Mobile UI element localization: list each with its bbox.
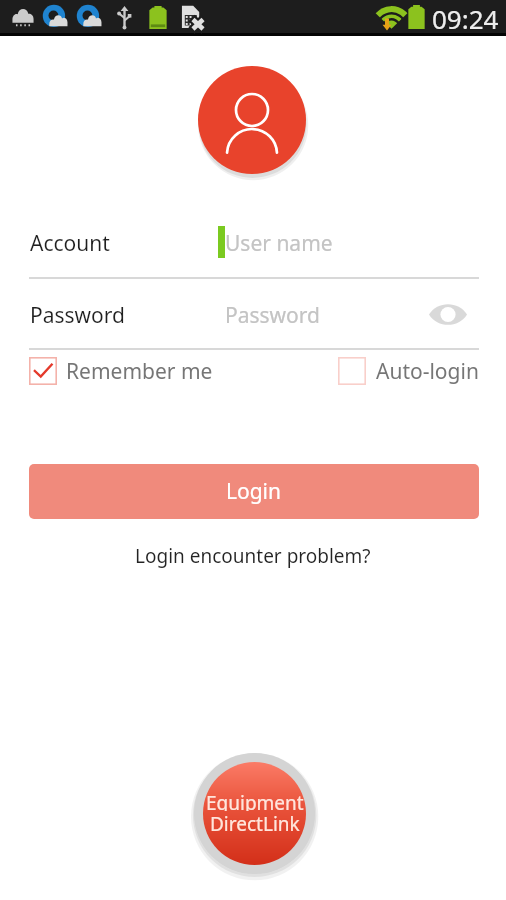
staticText: Remember me <box>66 357 213 386</box>
button[interactable]: Auto-login <box>338 354 479 388</box>
button[interactable]: Password <box>21 292 201 336</box>
button[interactable]: Equipment <box>203 762 306 865</box>
staticText: Equipment <box>206 790 304 811</box>
staticText: Account <box>30 229 110 258</box>
button[interactable]: Show password <box>425 291 471 337</box>
staticText: Login <box>226 477 282 506</box>
staticText: User name <box>225 229 333 258</box>
staticText: Password <box>30 301 125 330</box>
button[interactable]: Remember me <box>29 354 213 388</box>
staticText: DirectLink <box>210 811 300 832</box>
button[interactable]: Profile avatar <box>198 66 306 174</box>
staticText: Password <box>225 301 320 330</box>
staticText: 09:24 <box>432 1 499 36</box>
button[interactable]: Login encounter problem? <box>135 543 371 569</box>
staticText: Auto-login <box>376 357 479 386</box>
button[interactable]: Login <box>29 464 479 519</box>
button[interactable]: Account <box>21 220 201 264</box>
